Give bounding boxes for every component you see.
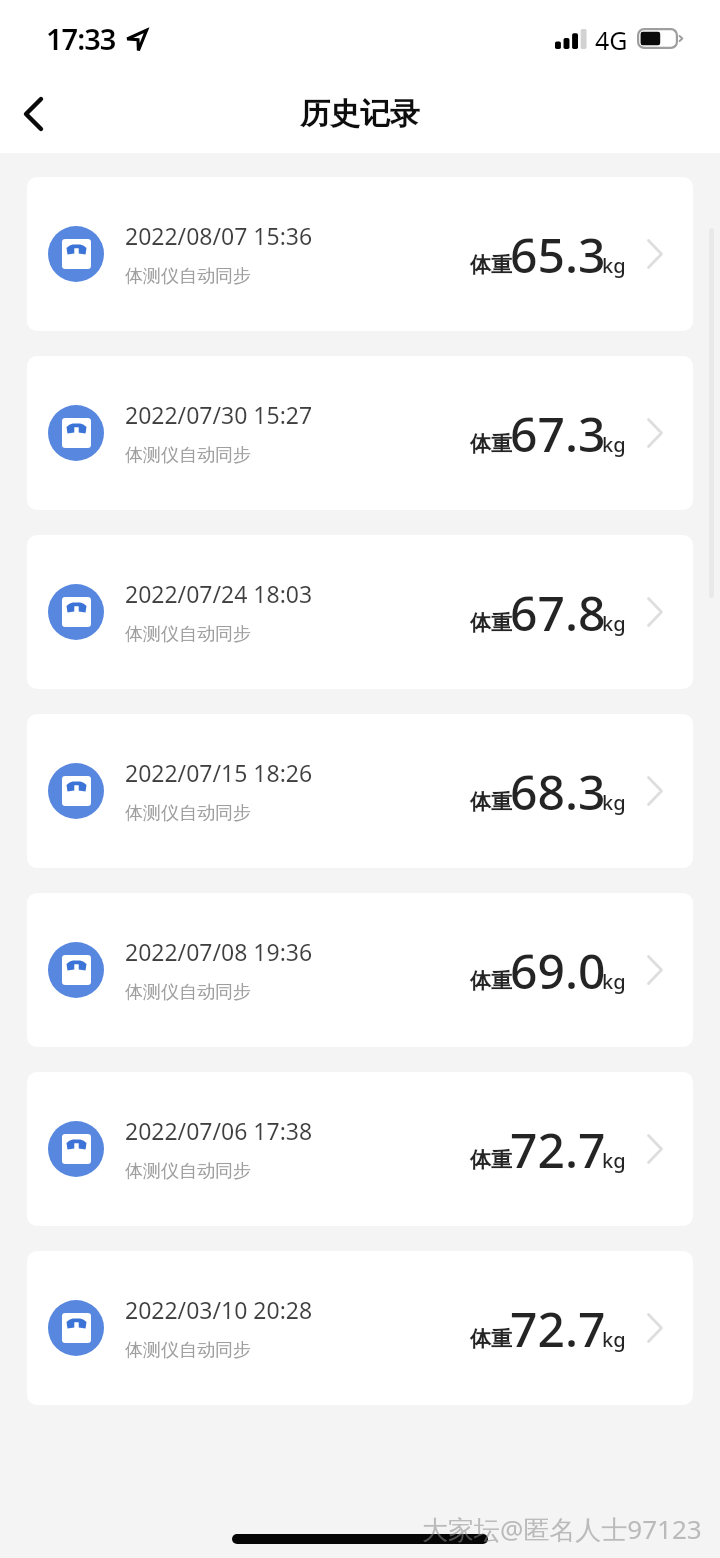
- staticText: 2022/07/08 19:36: [125, 936, 313, 967]
- staticText: 体重: [470, 610, 512, 636]
- staticText: kg: [602, 1326, 626, 1353]
- staticText: 67.8: [510, 580, 606, 645]
- button[interactable]: 2022/07/08 19:36: [27, 893, 693, 1047]
- staticText: 体测仪自动同步: [125, 802, 251, 825]
- staticText: 67.3: [510, 401, 606, 466]
- staticText: kg: [602, 1147, 626, 1174]
- staticText: 68.3: [510, 759, 606, 824]
- staticText: 体测仪自动同步: [125, 1160, 251, 1183]
- staticText: kg: [602, 431, 626, 458]
- button[interactable]: 2022/08/07 15:36: [27, 177, 693, 331]
- staticText: 体测仪自动同步: [125, 265, 251, 288]
- staticText: 72.7: [510, 1296, 606, 1361]
- staticText: 2022/08/07 15:36: [125, 220, 313, 251]
- staticText: 65.3: [510, 222, 606, 287]
- staticText: 2022/03/10 20:28: [125, 1294, 313, 1325]
- button[interactable]: 2022/07/24 18:03: [27, 535, 693, 689]
- staticText: kg: [602, 789, 626, 816]
- staticText: 大家坛@匿名人士97123: [422, 1511, 702, 1547]
- button[interactable]: 2022/07/30 15:27: [27, 356, 693, 510]
- staticText: 72.7: [510, 1117, 606, 1182]
- button[interactable]: Back: [7, 88, 59, 140]
- button[interactable]: 2022/07/15 18:26: [27, 714, 693, 868]
- staticText: 4G: [595, 23, 628, 57]
- staticText: 体重: [470, 789, 512, 815]
- staticText: 体重: [470, 252, 512, 278]
- staticText: 体测仪自动同步: [125, 1339, 251, 1362]
- staticText: kg: [602, 610, 626, 637]
- button[interactable]: 2022/03/10 20:28: [27, 1251, 693, 1405]
- staticText: 2022/07/30 15:27: [125, 399, 313, 430]
- staticText: 17:33: [46, 19, 116, 58]
- staticText: 2022/07/24 18:03: [125, 578, 313, 609]
- staticText: 体测仪自动同步: [125, 981, 251, 1004]
- staticText: kg: [602, 968, 626, 995]
- staticText: 历史记录: [0, 95, 720, 133]
- staticText: 体测仪自动同步: [125, 623, 251, 646]
- staticText: 2022/07/06 17:38: [125, 1115, 313, 1146]
- staticText: 体重: [470, 968, 512, 994]
- staticText: 体重: [470, 1326, 512, 1352]
- staticText: 2022/07/15 18:26: [125, 757, 313, 788]
- staticText: 体重: [470, 431, 512, 457]
- staticText: 69.0: [510, 938, 606, 1003]
- staticText: kg: [602, 252, 626, 279]
- staticText: 体重: [470, 1147, 512, 1173]
- staticText: 体测仪自动同步: [125, 444, 251, 467]
- button[interactable]: 2022/07/06 17:38: [27, 1072, 693, 1226]
